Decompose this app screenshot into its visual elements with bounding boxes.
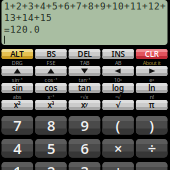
staticText: cos⁻¹ bbox=[44, 76, 57, 84]
staticText: log bbox=[112, 83, 124, 93]
staticText: − bbox=[148, 161, 156, 170]
button[interactable]: 1 bbox=[1, 162, 33, 170]
staticText: 10ˣ bbox=[114, 76, 122, 84]
button[interactable]: log bbox=[102, 83, 134, 93]
button[interactable]: 6 bbox=[69, 139, 100, 157]
staticText: 7 bbox=[13, 115, 21, 135]
staticText: FSE bbox=[46, 59, 55, 67]
button[interactable]: ln bbox=[136, 83, 167, 93]
staticText: TAB bbox=[80, 59, 89, 67]
staticText: abs bbox=[13, 93, 22, 101]
staticText: x² bbox=[14, 100, 21, 110]
staticText: √ bbox=[116, 100, 121, 110]
staticText: =120.0 bbox=[4, 24, 40, 35]
staticText: sin bbox=[12, 83, 23, 93]
staticText: x³ bbox=[47, 100, 54, 110]
staticText: 6 bbox=[80, 138, 88, 158]
button[interactable]: ( bbox=[102, 116, 134, 134]
staticText: BS bbox=[46, 49, 55, 59]
staticText: ) bbox=[149, 115, 154, 135]
staticText: eˣ bbox=[149, 76, 154, 84]
button[interactable]: xʸ bbox=[69, 100, 100, 110]
staticText: x⁻¹ bbox=[47, 93, 54, 101]
button[interactable]: BS bbox=[35, 49, 67, 59]
staticText: 1+2+3+4+5+6+7+8+9+10+11+12+ bbox=[4, 1, 166, 12]
staticText: 5 bbox=[47, 138, 55, 158]
staticText: AB bbox=[115, 59, 121, 67]
staticText: tan bbox=[78, 83, 91, 93]
staticText: 8 bbox=[47, 115, 55, 135]
button[interactable]: 3 bbox=[69, 162, 100, 170]
staticText: π bbox=[149, 100, 155, 110]
staticText: 9 bbox=[80, 115, 88, 135]
button[interactable]: sin bbox=[1, 83, 33, 93]
button[interactable]: INS bbox=[102, 49, 134, 59]
staticText: 13+14+15 bbox=[4, 13, 52, 23]
button[interactable]: 8 bbox=[35, 116, 67, 134]
button[interactable]: ) bbox=[136, 116, 167, 134]
staticText: ( bbox=[116, 115, 121, 135]
button[interactable]: x² bbox=[1, 100, 33, 110]
staticText: + bbox=[114, 161, 122, 170]
button[interactable]: Next bbox=[136, 66, 167, 76]
button[interactable]: cos bbox=[35, 83, 67, 93]
button[interactable]: Previous bbox=[102, 66, 134, 76]
staticText: About it bbox=[143, 59, 161, 67]
staticText: INS bbox=[112, 49, 125, 59]
button[interactable]: ALT bbox=[1, 49, 33, 59]
staticText: n! bbox=[150, 93, 154, 101]
button[interactable]: Degrees radians gradians bbox=[1, 66, 33, 76]
staticText: 4 bbox=[13, 138, 21, 158]
button[interactable]: √ bbox=[102, 100, 134, 110]
button[interactable]: Fixed scientific engineering bbox=[35, 66, 67, 76]
staticText: CLR bbox=[145, 49, 159, 59]
button[interactable]: DEL bbox=[69, 49, 100, 59]
button[interactable]: × bbox=[102, 139, 134, 157]
staticText: sin⁻¹ bbox=[12, 76, 23, 84]
button[interactable]: 9 bbox=[69, 116, 100, 134]
button[interactable]: 2 bbox=[35, 162, 67, 170]
button[interactable]: ÷ bbox=[136, 139, 167, 157]
staticText: ln bbox=[148, 83, 155, 93]
staticText: × bbox=[114, 138, 122, 158]
button[interactable]: − bbox=[136, 162, 167, 170]
staticText: ALT bbox=[10, 49, 24, 59]
staticText: ʸ√x bbox=[80, 93, 88, 101]
staticText: 1 bbox=[13, 161, 21, 170]
button[interactable]: tan bbox=[69, 83, 100, 93]
button[interactable]: 4 bbox=[1, 139, 33, 157]
staticText: tan⁻¹ bbox=[78, 76, 90, 84]
staticText: DRG bbox=[12, 59, 23, 67]
button[interactable]: + bbox=[102, 162, 134, 170]
button[interactable]: x³ bbox=[35, 100, 67, 110]
button[interactable]: Tab bbox=[69, 66, 100, 76]
staticText: 3 bbox=[80, 161, 88, 170]
staticText: xʸ bbox=[81, 100, 88, 110]
button[interactable]: 5 bbox=[35, 139, 67, 157]
staticText: DEL bbox=[77, 49, 91, 59]
staticText: 2 bbox=[47, 161, 55, 170]
button[interactable]: 7 bbox=[1, 116, 33, 134]
staticText: ⁿ√ bbox=[116, 93, 121, 101]
button[interactable]: π bbox=[136, 100, 167, 110]
staticText: ÷ bbox=[148, 138, 156, 158]
staticText: cos bbox=[44, 83, 57, 93]
button[interactable]: CLR bbox=[136, 49, 167, 59]
